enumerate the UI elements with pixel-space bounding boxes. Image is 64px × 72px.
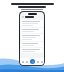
- button[interactable]: [21, 20, 43, 27]
- button[interactable]: Tab: [21, 60, 24, 63]
- button[interactable]: [21, 34, 43, 41]
- button[interactable]: Tab: [40, 60, 43, 63]
- button[interactable]: [21, 42, 43, 47]
- button[interactable]: Tab: [36, 60, 39, 63]
- button[interactable]: Tab: [25, 60, 28, 63]
- button[interactable]: [21, 48, 43, 53]
- button[interactable]: [21, 28, 43, 33]
- button[interactable]: Add: [30, 59, 35, 64]
